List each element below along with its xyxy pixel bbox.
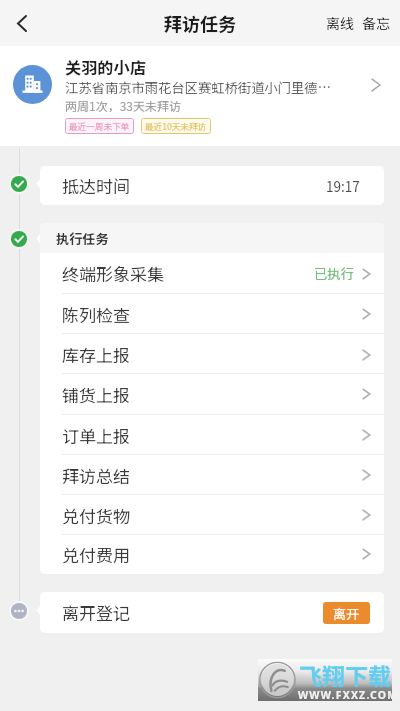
staticText: 执行任务 bbox=[56, 229, 109, 248]
staticText: 陈列检查 bbox=[62, 302, 362, 327]
staticText: 备忘 bbox=[362, 13, 390, 33]
staticText: 离线 bbox=[326, 13, 354, 33]
staticText: 关羽的小店 bbox=[65, 55, 146, 78]
button[interactable]: 铺货上报 bbox=[40, 374, 384, 414]
staticText: 兑付费用 bbox=[62, 542, 362, 567]
staticText: 两周1次，33天未拜访 bbox=[65, 97, 181, 114]
button[interactable]: 离线 bbox=[322, 5, 358, 41]
button[interactable]: 拜访总结 bbox=[40, 455, 384, 495]
staticText: 已执行 bbox=[314, 264, 354, 283]
staticText: 库存上报 bbox=[62, 342, 362, 367]
button[interactable]: 终端形象采集 bbox=[40, 253, 384, 294]
staticText: 江苏省南京市雨花台区赛虹桥街道小门里德… bbox=[65, 78, 361, 97]
button[interactable]: More options bbox=[9, 601, 29, 621]
staticText: 离开 bbox=[333, 604, 360, 623]
staticText: 拜访总结 bbox=[62, 463, 362, 488]
button[interactable]: 备忘 bbox=[358, 5, 400, 41]
staticText: 最近一周未下单 bbox=[69, 120, 130, 132]
staticText: 离开登记 bbox=[62, 600, 323, 625]
staticText: 抵达时间 bbox=[62, 173, 326, 198]
staticText: 飞翔下载 bbox=[299, 658, 391, 691]
button[interactable]: 抵达时间 bbox=[40, 166, 384, 205]
button[interactable]: 兑付货物 bbox=[40, 495, 384, 535]
staticText: 拜访任务 bbox=[164, 10, 236, 36]
button[interactable]: Store details bbox=[366, 75, 386, 95]
staticText: WWW.FXXZ.COM bbox=[298, 688, 399, 702]
button[interactable]: 订单上报 bbox=[40, 415, 384, 455]
button[interactable]: 离开 bbox=[323, 602, 370, 624]
staticText: 最近10天未拜访 bbox=[145, 120, 207, 132]
staticText: 订单上报 bbox=[62, 423, 362, 448]
button[interactable]: 兑付费用 bbox=[40, 535, 384, 573]
button[interactable]: 陈列检查 bbox=[40, 294, 384, 334]
staticText: 兑付货物 bbox=[62, 503, 362, 528]
staticText: 铺货上报 bbox=[62, 382, 362, 407]
button[interactable]: Back bbox=[0, 1, 44, 45]
staticText: 终端形象采集 bbox=[62, 261, 314, 286]
button[interactable]: 库存上报 bbox=[40, 334, 384, 375]
staticText: 19:17 bbox=[326, 176, 360, 196]
